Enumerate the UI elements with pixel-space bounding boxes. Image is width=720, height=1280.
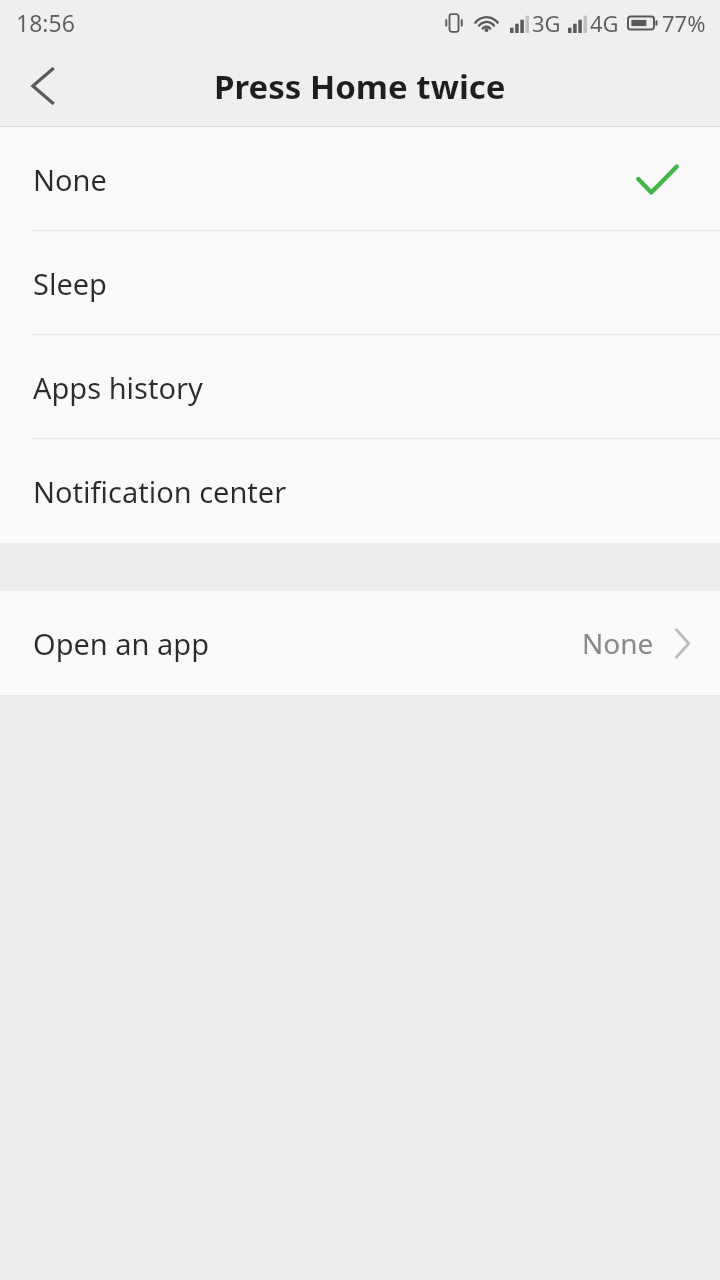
staticText: Notification center [33, 472, 287, 511]
staticText: 4G [590, 8, 619, 38]
button[interactable]: Notification center [0, 439, 720, 543]
button[interactable]: Open an app [0, 591, 720, 695]
staticText: None [582, 624, 654, 662]
staticText: 3G [532, 8, 561, 38]
staticText: 18:56 [16, 7, 75, 38]
staticText: Press Home twice [214, 64, 506, 109]
staticText: Open an app [33, 624, 209, 663]
button[interactable]: None [0, 127, 720, 231]
button[interactable]: Sleep [0, 231, 720, 335]
staticText: Apps history [33, 368, 203, 407]
staticText: 77% [662, 8, 706, 38]
staticText: None [33, 160, 107, 199]
staticText: Sleep [33, 264, 107, 303]
button[interactable]: Back [0, 45, 84, 127]
button[interactable]: Apps history [0, 335, 720, 439]
